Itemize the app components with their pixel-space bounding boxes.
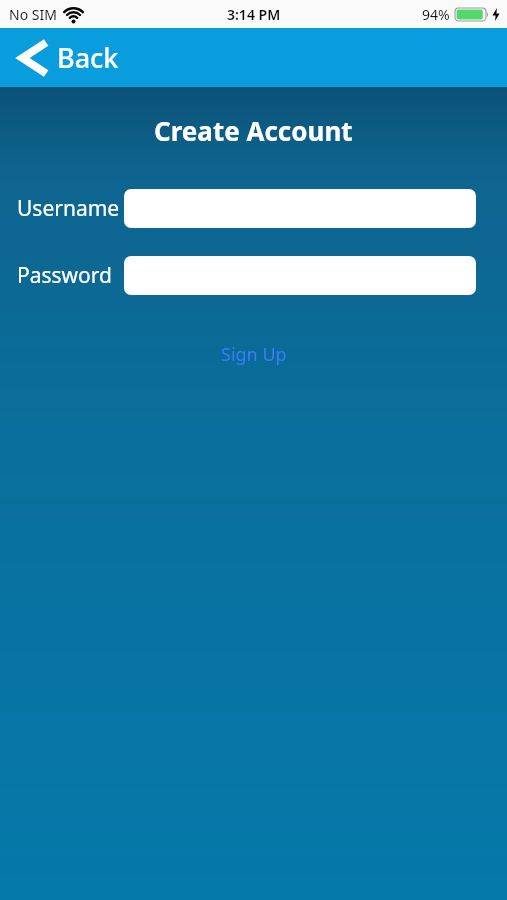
button[interactable]: [124, 256, 476, 295]
button[interactable]: [124, 189, 476, 228]
staticText: Create Account: [154, 113, 353, 148]
button[interactable]: Sign Up: [221, 342, 287, 367]
staticText: Back: [57, 39, 119, 76]
staticText: No SIM: [9, 5, 57, 24]
staticText: Username: [17, 194, 120, 223]
staticText: Password: [17, 261, 112, 290]
button[interactable]: Back: [18, 39, 119, 76]
staticText: Sign Up: [221, 342, 287, 367]
staticText: 94%: [422, 5, 450, 24]
staticText: 3:14 PM: [227, 5, 281, 24]
